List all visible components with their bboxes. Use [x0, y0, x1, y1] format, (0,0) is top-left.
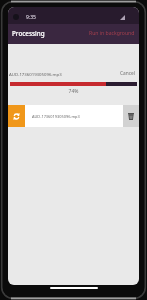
button[interactable]: Run in background	[85, 26, 139, 43]
button[interactable]: AUD-1736019305096.mp3	[8, 105, 139, 127]
staticText: Processing	[12, 29, 45, 38]
button[interactable]: Cancel	[118, 68, 139, 79]
staticText: AUD-1736019305096.mp3	[32, 114, 119, 119]
staticText: Cancel	[120, 70, 135, 77]
staticText: AUD-1736019305096.mp3	[9, 71, 118, 77]
staticText: Run in background	[89, 30, 135, 37]
staticText: 74%	[8, 88, 139, 95]
button[interactable]: Delete	[123, 105, 139, 127]
staticText: 9:35	[26, 14, 36, 21]
